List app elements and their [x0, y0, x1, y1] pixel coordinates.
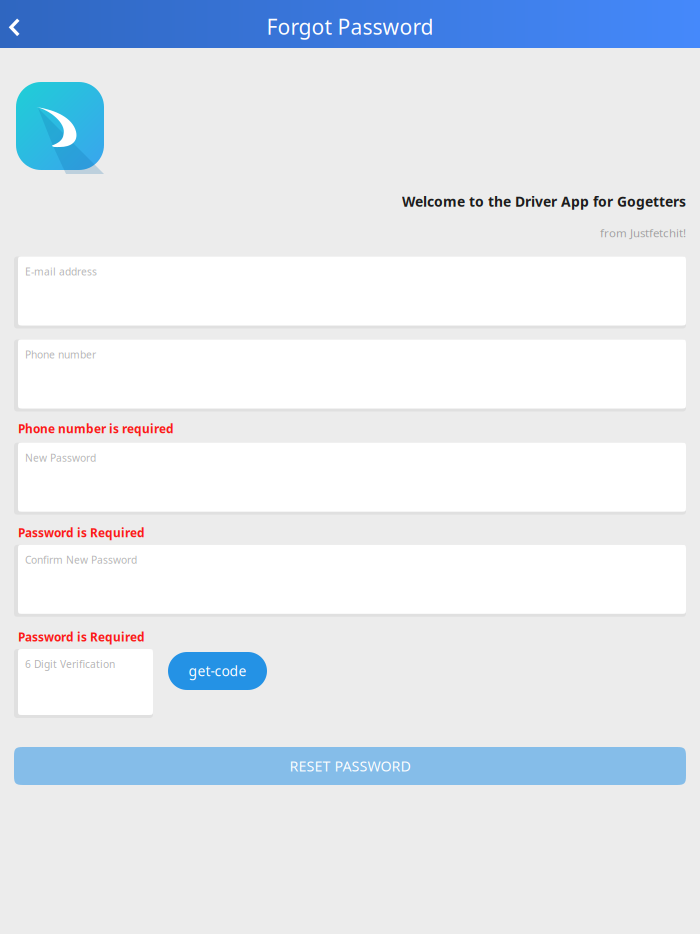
staticText: Phone number: [25, 347, 96, 361]
staticText: Password is Required: [18, 525, 145, 541]
button[interactable]: RESET PASSWORD: [14, 747, 686, 785]
staticText: Confirm New Password: [25, 553, 137, 567]
staticText: E-mail address: [25, 264, 97, 278]
staticText: Phone number is required: [18, 420, 174, 437]
staticText: get-code: [188, 661, 246, 680]
button[interactable]: Back: [0, 0, 36, 48]
staticText: RESET PASSWORD: [289, 756, 410, 776]
staticText: Welcome to the Driver App for Gogetters: [402, 192, 686, 211]
staticText: from Justfetchit!: [600, 225, 686, 240]
staticText: Forgot Password: [266, 12, 433, 41]
button[interactable]: get-code: [168, 652, 267, 690]
staticText: 6 Digit Verification: [25, 657, 115, 671]
staticText: New Password: [25, 451, 96, 465]
staticText: Password is Required: [18, 629, 145, 645]
